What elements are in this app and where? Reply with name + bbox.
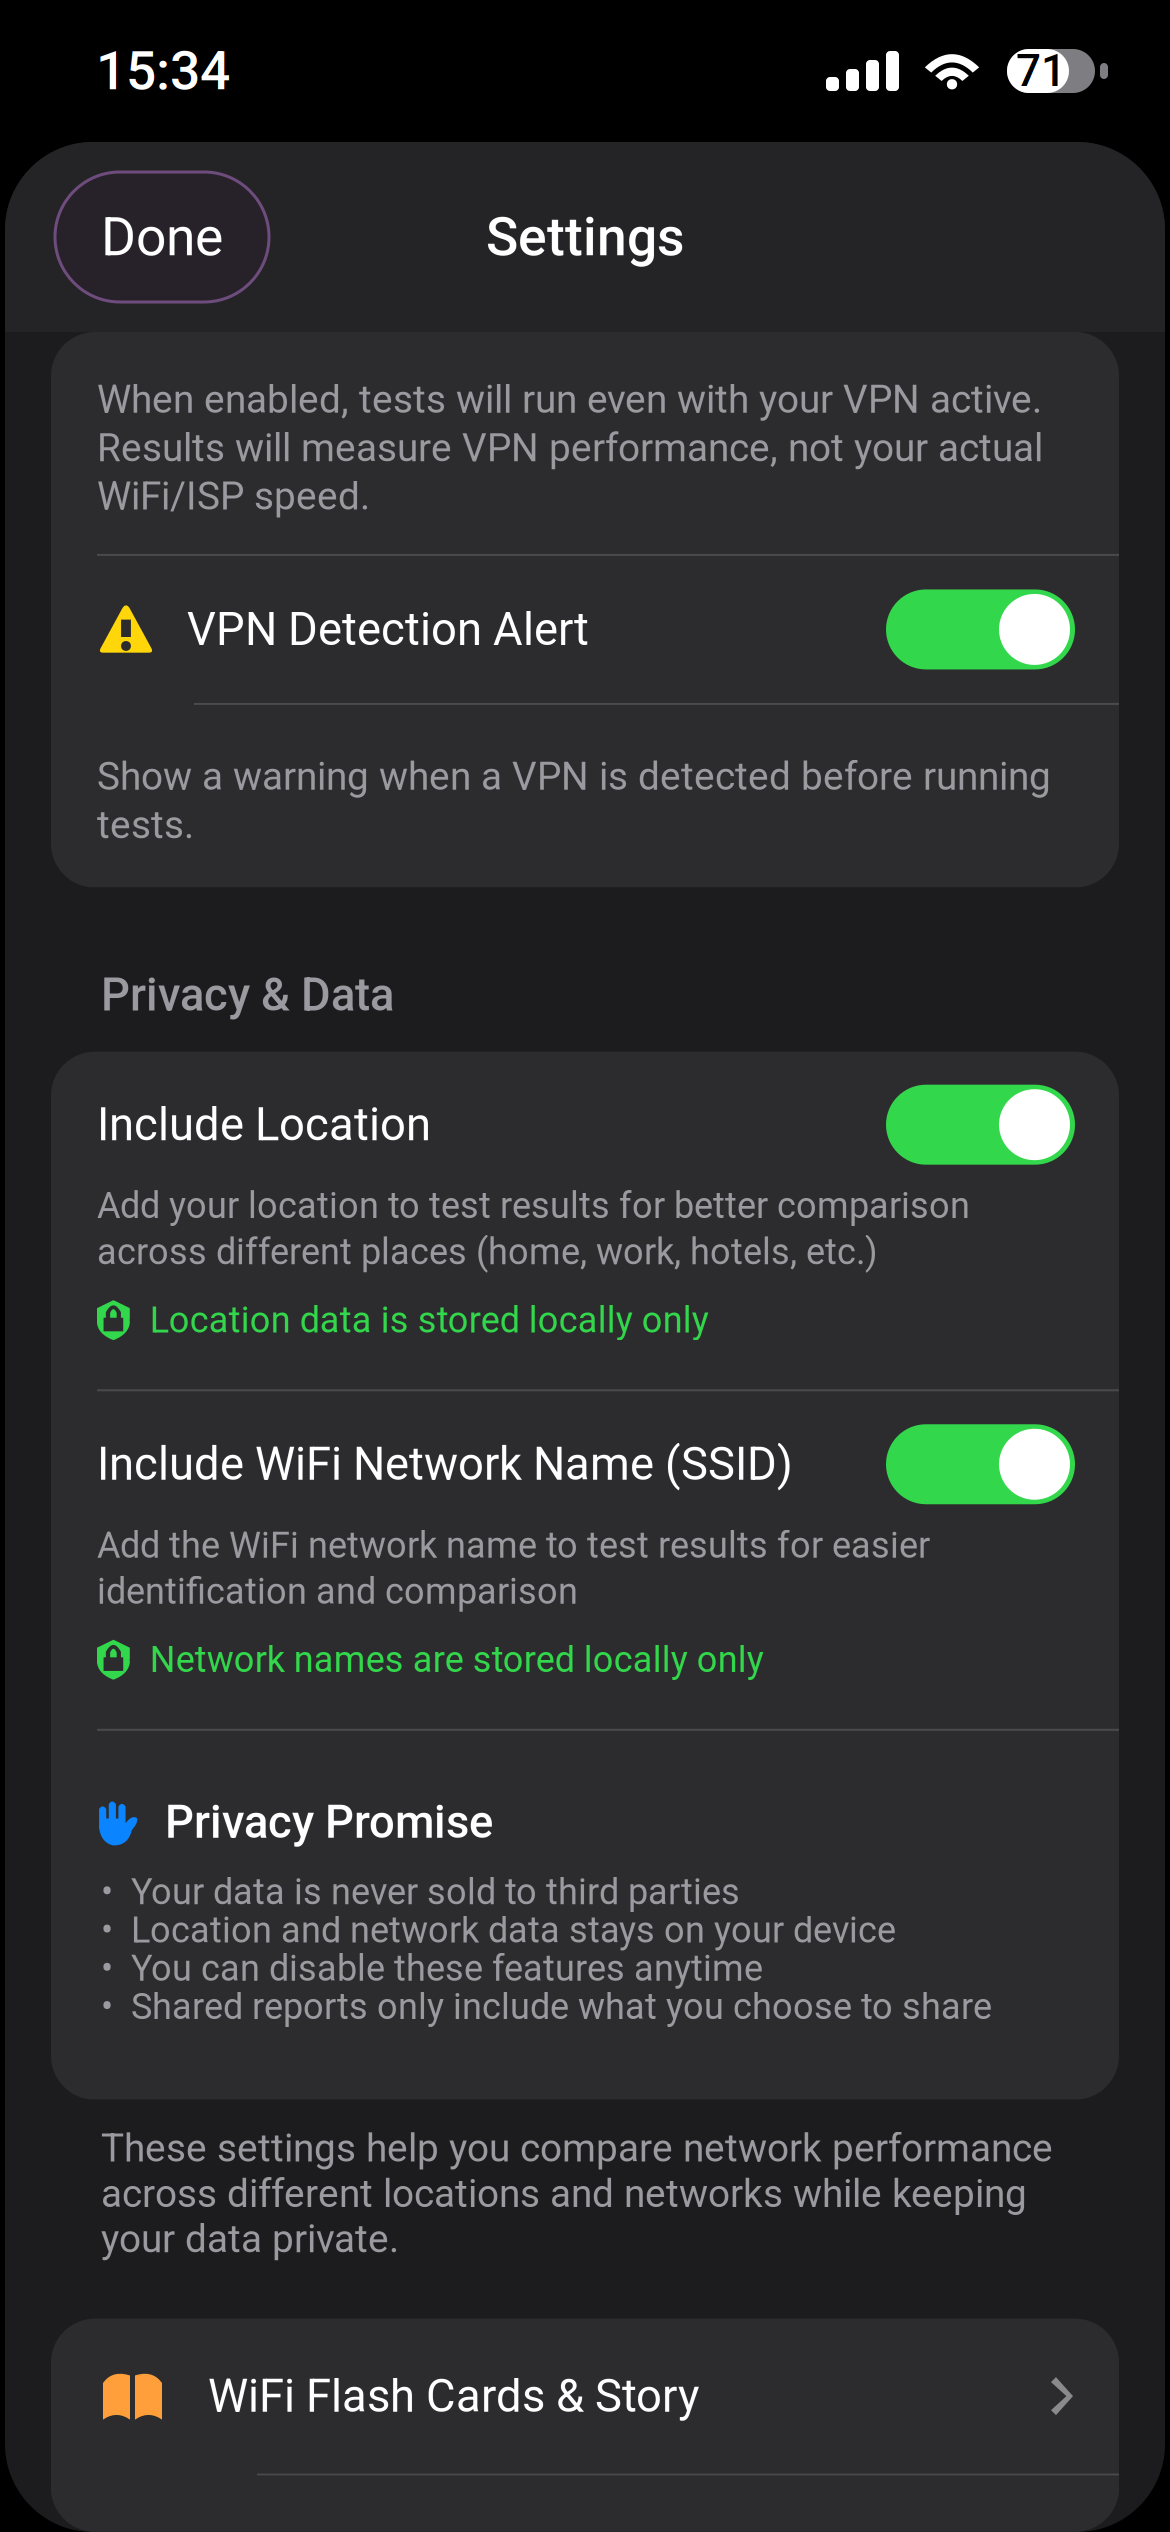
button[interactable]: Include Location [97, 1052, 1075, 1185]
button[interactable]: VPN Detection Alert [51, 556, 1119, 703]
staticText: These settings help you compare network … [101, 2126, 1053, 2262]
staticText: 15:34 [96, 40, 230, 102]
staticText: WiFi Flash Cards & Story [208, 2370, 699, 2423]
staticText: Privacy & Data [101, 969, 394, 1022]
staticText: 71 [1016, 45, 1066, 97]
button[interactable]: Include WiFi Network Name (SSID) [97, 1391, 1075, 1524]
staticText: Done [101, 206, 223, 268]
button[interactable]: Done [55, 172, 269, 302]
staticText: • Your data is never sold to third parti… [101, 1871, 992, 2028]
staticText: When enabled, tests will run even with y… [97, 377, 1043, 519]
staticText: Privacy Promise [165, 1796, 493, 1849]
staticText: Network names are stored locally only [150, 1639, 764, 1681]
staticText: Settings [486, 206, 684, 268]
staticText: Include WiFi Network Name (SSID) [97, 1438, 793, 1491]
staticText: Add your location to test results for be… [97, 1185, 970, 1273]
staticText: VPN Detection Alert [187, 603, 589, 656]
staticText: Add the WiFi network name to test result… [97, 1524, 930, 1613]
staticText: Location data is stored locally only [150, 1299, 709, 1341]
staticText: Show a warning when a VPN is detected be… [97, 754, 1051, 847]
staticText: Include Location [97, 1098, 431, 1151]
button[interactable]: WiFi Flash Cards & Story [51, 2319, 1119, 2474]
